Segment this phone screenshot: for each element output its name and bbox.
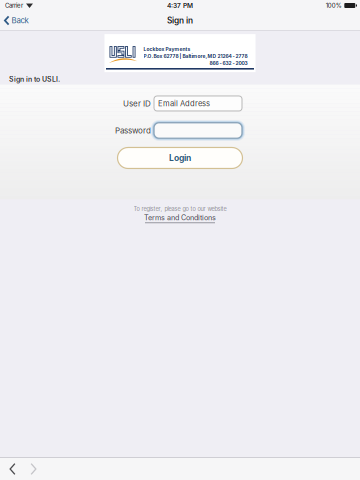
staticText: Email Address xyxy=(158,99,210,108)
button[interactable]: Back xyxy=(0,11,31,30)
button[interactable]: Login xyxy=(117,147,242,168)
staticText: Password xyxy=(115,126,151,135)
button[interactable]: Forward xyxy=(23,458,43,480)
button[interactable]: Back xyxy=(1,458,23,480)
staticText: Terms and Conditions xyxy=(144,213,216,222)
staticText: Carrier xyxy=(5,2,23,9)
staticText: To register, please go to our website xyxy=(133,205,226,212)
staticText: 866 - 632 - 2003 xyxy=(209,60,247,66)
staticText: 100% xyxy=(326,2,342,9)
staticText: Lockbox Payments xyxy=(143,46,190,52)
staticText: Back xyxy=(11,16,28,25)
staticText: User ID xyxy=(123,99,151,108)
staticText: P.O. Box 62778 | Baltimore, MD 21264 - 2… xyxy=(143,53,247,59)
staticText: Login xyxy=(169,153,191,163)
staticText: Sign in xyxy=(167,15,193,25)
staticText: Sign in to USLI. xyxy=(9,75,60,83)
button[interactable]: Terms and Conditions xyxy=(144,213,216,223)
staticText: 4:37 PM xyxy=(167,1,193,9)
